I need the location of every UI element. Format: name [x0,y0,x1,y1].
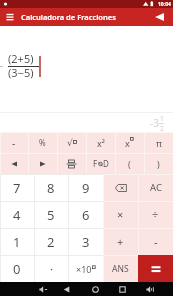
button[interactable] [0,153,28,174]
staticText: 0 [13,260,21,278]
staticText: × [117,207,124,222]
staticText: 9 [82,179,90,197]
button[interactable] [28,153,57,174]
button[interactable]: ( [115,153,144,174]
staticText: 3 [82,233,90,251]
staticText: % [39,137,46,148]
staticText: ANS [112,263,129,275]
staticText: F [93,158,98,169]
staticText: 2 [47,233,55,251]
button[interactable] [63,286,70,293]
button[interactable]: 1 [0,228,34,255]
staticText: (2+5) [8,51,34,66]
staticText: x² [97,137,105,149]
button[interactable] [92,286,99,293]
button[interactable]: · [34,255,68,282]
staticText: √ [67,138,73,148]
staticText: 10:04 [158,1,171,8]
button[interactable]: 6 [68,201,103,228]
staticText: AC [150,181,162,194]
staticText: 8 [47,179,55,197]
button[interactable]: π [144,132,173,153]
button[interactable]: 3 [68,228,103,255]
staticText: π [156,137,162,149]
staticText: ×10 [76,263,92,275]
button[interactable] [39,286,49,293]
staticText: 1 [160,114,164,123]
button[interactable]: x² [86,132,115,153]
staticText: - [154,234,158,249]
button[interactable]: - [138,228,173,255]
staticText: ) [157,158,160,170]
button[interactable]: % [28,132,57,153]
button[interactable] [103,174,138,201]
staticText: 1 [13,233,21,251]
button[interactable]: F [86,153,115,174]
staticText: D [103,158,109,169]
button[interactable]: × [103,201,138,228]
staticText: ( [128,158,131,170]
button[interactable]: ÷ [138,201,173,228]
staticText: - [12,136,16,150]
staticText: · [50,261,53,276]
staticText: 6 [82,206,90,224]
button[interactable] [6,13,15,21]
button[interactable]: 2 [34,228,68,255]
button[interactable] [57,153,86,174]
button[interactable] [119,286,126,293]
button[interactable]: 5 [34,201,68,228]
button[interactable] [138,255,173,282]
button[interactable]: ) [144,153,173,174]
staticText: x [125,137,130,149]
button[interactable]: ANS [103,255,138,282]
button[interactable] [146,286,156,293]
button[interactable]: 4 [0,201,34,228]
staticText: (3−5) [8,65,34,80]
button[interactable]: 9 [68,174,103,201]
staticText: 4 [13,206,21,224]
staticText: Calculadora de Fracciones [21,12,116,22]
staticText: 7 [13,179,21,197]
button[interactable]: 7 [0,174,34,201]
button[interactable]: 0 [0,255,34,282]
staticText: ÷ [152,207,159,222]
button[interactable]: AC [138,174,173,201]
staticText: 5 [47,206,55,224]
button[interactable]: x [115,132,144,153]
staticText: 2 [160,124,164,133]
staticText: -3 [150,116,159,130]
button[interactable]: + [103,228,138,255]
button[interactable]: 8 [34,174,68,201]
button[interactable]: √ [57,132,86,153]
button[interactable]: - [0,132,28,153]
staticText: + [117,234,124,249]
button[interactable]: ×10 [68,255,103,282]
